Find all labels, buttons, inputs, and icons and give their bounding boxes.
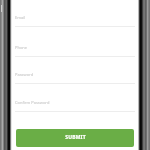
staticText: Confirm Password: [15, 100, 50, 105]
staticText: SUBMIT: [65, 134, 86, 141]
staticText: Phone: [15, 45, 28, 50]
button[interactable]: Email: [10, 6, 138, 34]
button[interactable]: Password: [10, 63, 138, 91]
button[interactable]: Phone: [10, 36, 138, 64]
staticText: Email: [15, 15, 26, 20]
button[interactable]: SUBMIT: [16, 129, 134, 147]
staticText: Password: [15, 72, 34, 77]
button[interactable]: Confirm Password: [10, 91, 138, 119]
